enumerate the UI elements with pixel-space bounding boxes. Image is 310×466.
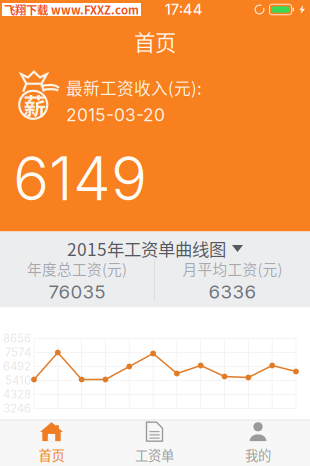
- staticText: 6492: [3, 360, 31, 373]
- staticText: 最新工资收入(元):: [66, 75, 202, 99]
- staticText: 飞翔下载 www.FXXZ.com: [4, 1, 139, 18]
- staticText: 7574: [5, 346, 31, 359]
- staticText: 8656: [3, 332, 31, 345]
- button[interactable]: 2015年工资单曲线图: [67, 238, 243, 258]
- staticText: 17:44: [165, 1, 203, 18]
- staticText: 76035: [48, 280, 105, 303]
- staticText: 5410: [5, 374, 31, 387]
- button[interactable]: 工资单: [103, 420, 206, 466]
- staticText: 2015年工资单曲线图: [67, 236, 226, 261]
- staticText: 我的: [245, 445, 271, 464]
- staticText: 6336: [208, 280, 256, 303]
- staticText: 工资单: [135, 445, 174, 464]
- staticText: 2015-03-20: [66, 105, 165, 126]
- staticText: 年度总工资(元): [27, 258, 127, 279]
- staticText: 月平均工资(元): [182, 258, 282, 279]
- button[interactable]: 首页: [0, 420, 103, 466]
- staticText: 4328: [3, 388, 31, 401]
- staticText: 6149: [13, 142, 147, 215]
- staticText: 首页: [38, 445, 64, 464]
- staticText: 首页: [134, 26, 176, 57]
- button[interactable]: 我的: [206, 420, 310, 466]
- staticText: 薪: [23, 88, 46, 121]
- staticText: 3246: [3, 402, 31, 415]
